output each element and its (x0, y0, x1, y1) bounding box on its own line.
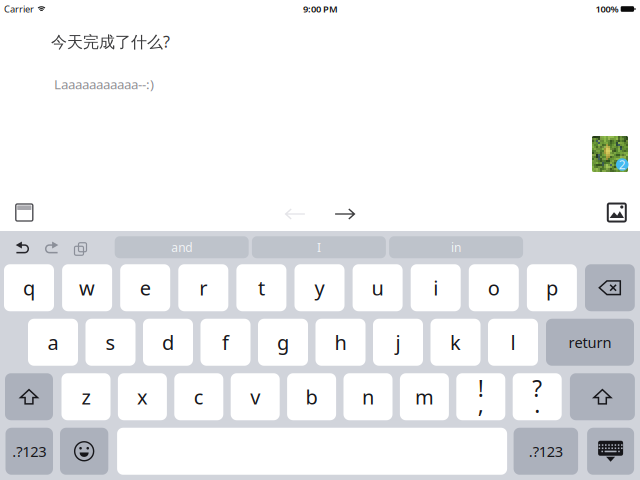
staticText: d (162, 329, 174, 356)
staticText: .?123 (12, 441, 46, 461)
button[interactable]: r (178, 264, 228, 311)
staticText: 今天完成了什么? (51, 31, 170, 52)
staticText: r (199, 274, 207, 301)
button[interactable]: c (174, 373, 223, 420)
button[interactable]: o (469, 264, 519, 311)
button[interactable]: Shift (570, 373, 635, 420)
staticText: Laaaaaaaaaaa--:) (54, 75, 154, 93)
button[interactable]: Paste (65, 230, 93, 264)
button[interactable]: I (252, 236, 386, 258)
button[interactable]: e (120, 264, 170, 311)
staticText: g (277, 329, 289, 356)
button[interactable]: Undo (9, 230, 37, 264)
staticText: and (171, 239, 192, 255)
button[interactable]: b (287, 373, 336, 420)
button[interactable]: Shift (5, 373, 53, 420)
staticText: , (478, 389, 484, 419)
button[interactable]: .?123 (5, 428, 53, 475)
staticText: b (306, 383, 318, 410)
staticText: ? (532, 373, 542, 403)
staticText: u (372, 274, 384, 301)
button[interactable]: d (143, 319, 193, 366)
button[interactable]: x (118, 373, 167, 420)
staticText: v (250, 383, 260, 410)
staticText: in (451, 239, 461, 255)
staticText: 9:00 PM (303, 3, 338, 15)
button[interactable]: Insert photo (608, 192, 626, 232)
button[interactable]: p (527, 264, 577, 311)
staticText: 2 (619, 157, 626, 172)
button[interactable]: u (353, 264, 403, 311)
staticText: x (137, 383, 148, 410)
button[interactable]: a (28, 319, 78, 366)
staticText: c (194, 383, 204, 410)
button[interactable]: Templates (16, 192, 33, 232)
staticText: 100% (595, 3, 618, 15)
button[interactable]: q (4, 264, 54, 311)
staticText: a (47, 329, 58, 356)
button[interactable]: Emoji (60, 428, 108, 475)
button[interactable]: g (258, 319, 308, 366)
button[interactable]: .?123 (514, 428, 578, 475)
button[interactable]: k (430, 319, 480, 366)
button[interactable]: l (488, 319, 538, 366)
button[interactable]: i (411, 264, 461, 311)
button[interactable]: f (200, 319, 250, 366)
button[interactable]: Hide keyboard (587, 428, 634, 475)
staticText: y (314, 274, 324, 301)
button[interactable]: s (85, 319, 135, 366)
staticText: ! (478, 373, 484, 403)
button[interactable]: y (294, 264, 344, 311)
button[interactable]: w (62, 264, 112, 311)
staticText: z (81, 383, 90, 410)
staticText: j (395, 329, 400, 356)
button[interactable]: v (231, 373, 280, 420)
button[interactable]: and (115, 236, 249, 258)
staticText: k (450, 329, 461, 356)
staticText: s (105, 329, 115, 356)
button[interactable]: t (236, 264, 286, 311)
button[interactable]: j (373, 319, 423, 366)
staticText: q (23, 274, 35, 301)
button[interactable]: in (389, 236, 523, 258)
button[interactable]: Delete (585, 264, 635, 311)
staticText: Carrier (4, 3, 34, 15)
staticText: i (433, 274, 438, 301)
button[interactable]: Next (335, 194, 355, 234)
button[interactable]: return (546, 319, 634, 366)
button[interactable]: n (343, 373, 392, 420)
button[interactable]: m (400, 373, 449, 420)
staticText: return (568, 332, 611, 352)
staticText: p (546, 274, 558, 301)
staticText: f (222, 329, 229, 356)
staticText: n (362, 383, 374, 410)
staticText: o (488, 274, 500, 301)
staticText: t (258, 274, 265, 301)
staticText: l (510, 329, 515, 356)
button[interactable]: h (315, 319, 365, 366)
button[interactable]: ? (513, 373, 562, 420)
button[interactable]: ! (456, 373, 505, 420)
staticText: I (317, 239, 321, 255)
button[interactable]: Redo (37, 230, 65, 264)
staticText: e (140, 274, 151, 301)
staticText: w (79, 274, 95, 301)
staticText: h (334, 329, 346, 356)
staticText: . (534, 389, 540, 419)
button[interactable]: Previous (285, 194, 305, 234)
staticText: m (415, 383, 434, 410)
button[interactable]: z (61, 373, 110, 420)
staticText: .?123 (529, 441, 563, 461)
